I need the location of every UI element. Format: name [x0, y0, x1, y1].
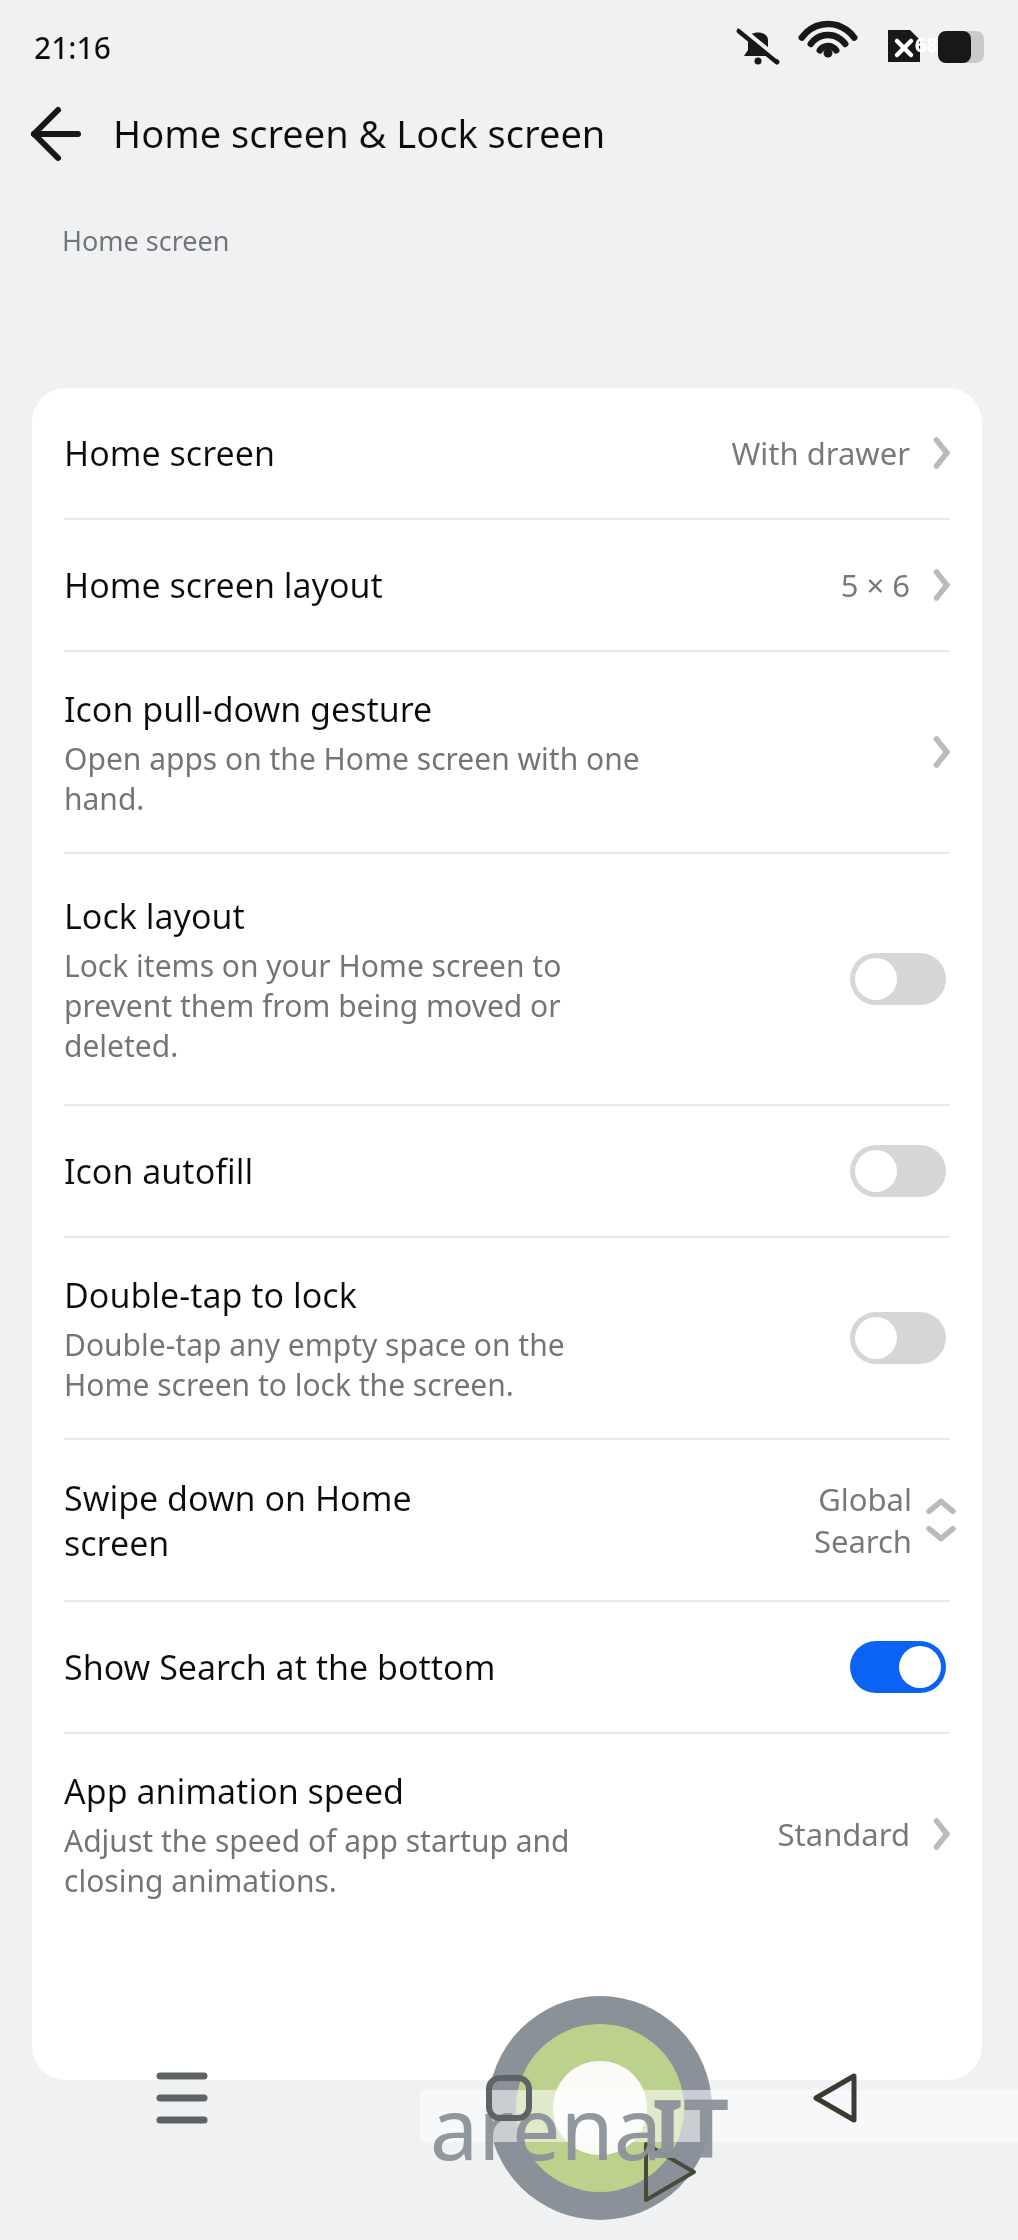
button[interactable]: Back — [20, 98, 92, 170]
button[interactable]: Recent apps — [140, 2056, 224, 2140]
button[interactable]: Home screen layout — [32, 520, 982, 650]
button[interactable]: Home screen — [32, 388, 982, 518]
staticText: Open apps on the Home screen with one ha… — [64, 738, 640, 819]
staticText: 21:16 — [34, 27, 111, 68]
staticText: Home screen — [64, 430, 275, 476]
staticText: Lock items on your Home screen to preven… — [64, 945, 562, 1066]
button[interactable]: Double-tap to lock — [32, 1238, 982, 1438]
button[interactable]: App animation speed — [32, 1734, 982, 1934]
staticText: Swipe down on Home screen — [64, 1475, 412, 1565]
staticText: Home screen — [62, 222, 230, 259]
staticText: Icon pull-down gesture — [64, 686, 433, 732]
staticText: Adjust the speed of app startup and clos… — [64, 1820, 570, 1901]
staticText: Lock layout — [64, 893, 245, 939]
staticText: 68 — [915, 31, 938, 58]
staticText: Double-tap any empty space on the Home s… — [64, 1324, 565, 1405]
staticText: arena — [430, 2068, 662, 2185]
staticText: With drawer — [731, 432, 910, 474]
button[interactable]: Show Search at the bottom — [32, 1602, 982, 1732]
staticText: Home screen & Lock screen — [113, 107, 606, 159]
staticText: Standard — [777, 1813, 910, 1855]
staticText: App animation speed — [64, 1768, 405, 1814]
staticText: Double-tap to lock — [64, 1272, 357, 1318]
staticText: Home screen layout — [64, 562, 383, 608]
staticText: 5 × 6 — [840, 564, 910, 606]
button[interactable]: Lock layout — [32, 854, 982, 1104]
button[interactable]: Home — [467, 2056, 551, 2140]
button[interactable]: Icon autofill — [32, 1106, 982, 1236]
staticText: Icon autofill — [64, 1148, 254, 1194]
button[interactable]: Swipe down on Home screen — [32, 1440, 982, 1600]
staticText: Show Search at the bottom — [64, 1644, 496, 1690]
staticText: Global Search — [813, 1478, 912, 1562]
button[interactable]: Back — [794, 2056, 878, 2140]
staticText: IT — [652, 2072, 730, 2181]
button[interactable]: Icon pull-down gesture — [32, 652, 982, 852]
